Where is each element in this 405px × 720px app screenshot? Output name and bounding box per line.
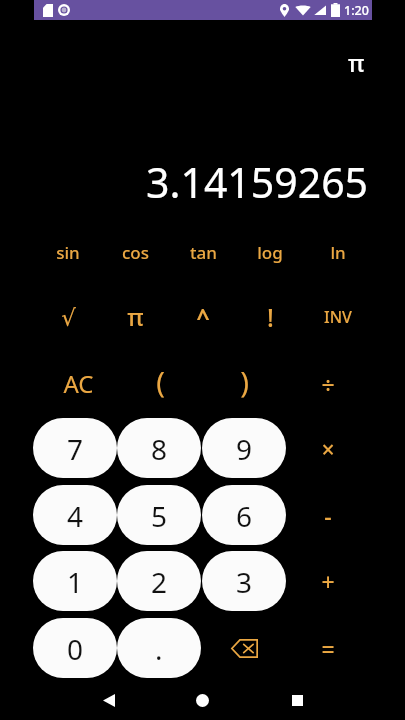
staticText: = xyxy=(321,633,335,664)
staticText: π xyxy=(348,46,365,79)
staticText: 4 xyxy=(67,497,84,535)
staticText: INV xyxy=(324,306,352,328)
staticText: 2 xyxy=(151,563,168,601)
button[interactable]: AC xyxy=(48,361,108,405)
staticText: - xyxy=(324,500,332,531)
button[interactable]: Backspace xyxy=(216,626,272,670)
staticText: π xyxy=(127,300,144,333)
button[interactable]: ! xyxy=(240,295,300,339)
staticText: 3 xyxy=(236,563,253,601)
button[interactable]: ^ xyxy=(173,294,233,338)
button[interactable]: 5 xyxy=(117,485,201,545)
button[interactable]: INV xyxy=(308,295,368,339)
staticText: tan xyxy=(190,241,217,264)
staticText: sin xyxy=(56,241,80,264)
staticText: 5 xyxy=(151,497,168,535)
button[interactable]: 6 xyxy=(202,485,286,545)
staticText: 8 xyxy=(151,430,168,468)
button[interactable]: log xyxy=(240,230,300,274)
button[interactable]: Home xyxy=(178,676,226,720)
staticText: AC xyxy=(63,367,94,400)
button[interactable]: sin xyxy=(38,230,98,274)
button[interactable]: Back xyxy=(85,676,133,720)
button[interactable]: 4 xyxy=(33,485,117,545)
staticText: 0 xyxy=(67,630,84,668)
staticText: ) xyxy=(240,362,249,401)
button[interactable]: cos xyxy=(105,230,165,274)
staticText: ln xyxy=(330,241,346,264)
staticText: 3.14159265 xyxy=(146,154,369,210)
staticText: . xyxy=(155,630,163,668)
staticText: √ xyxy=(61,305,76,332)
button[interactable]: ) xyxy=(214,359,274,403)
button[interactable]: . xyxy=(117,618,201,678)
staticText: 9 xyxy=(236,430,253,468)
staticText: + xyxy=(321,566,335,597)
button[interactable]: 9 xyxy=(202,418,286,478)
staticText: ÷ xyxy=(321,369,335,400)
button[interactable]: 8 xyxy=(117,418,201,478)
button[interactable]: + xyxy=(298,559,358,603)
button[interactable]: 3 xyxy=(202,551,286,611)
staticText: 1:20 xyxy=(344,2,369,19)
button[interactable]: 0 xyxy=(33,618,117,678)
button[interactable]: 7 xyxy=(33,418,117,478)
staticText: ( xyxy=(156,362,165,401)
button[interactable]: π xyxy=(105,294,165,338)
button[interactable]: √ xyxy=(38,296,98,340)
staticText: × xyxy=(321,433,335,464)
staticText: ! xyxy=(267,300,274,334)
staticText: 6 xyxy=(236,497,253,535)
button[interactable]: ÷ xyxy=(298,362,358,406)
staticText: ^ xyxy=(196,301,210,332)
button[interactable]: = xyxy=(298,626,358,670)
staticText: log xyxy=(257,241,283,264)
button[interactable]: 1 xyxy=(33,551,117,611)
button[interactable]: π xyxy=(334,42,378,82)
staticText: cos xyxy=(122,241,149,264)
button[interactable]: - xyxy=(298,493,358,537)
button[interactable]: ln xyxy=(308,230,368,274)
button[interactable]: ( xyxy=(130,359,190,403)
button[interactable]: tan xyxy=(173,230,233,274)
staticText: 1 xyxy=(67,563,84,601)
button[interactable]: × xyxy=(298,426,358,470)
button[interactable]: Recents xyxy=(273,676,321,720)
staticText: 7 xyxy=(67,430,84,468)
button[interactable]: 2 xyxy=(117,551,201,611)
